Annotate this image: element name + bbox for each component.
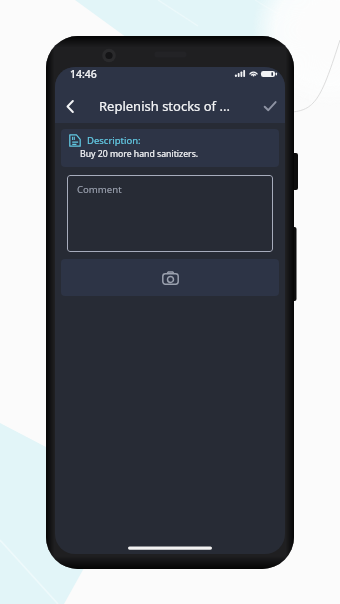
button[interactable]: Add photo — [61, 259, 279, 296]
button[interactable]: Back — [55, 91, 85, 121]
staticText: Buy 20 more hand sanitizers. — [80, 148, 199, 160]
button[interactable]: Comment — [67, 175, 273, 252]
staticText: Description: — [87, 134, 141, 147]
button[interactable]: Save — [255, 91, 285, 121]
button[interactable]: Description: — [61, 129, 279, 167]
staticText: Comment — [77, 183, 122, 196]
staticText: Replenish stocks of ... — [99, 97, 230, 115]
staticText: 14:46 — [70, 67, 97, 81]
